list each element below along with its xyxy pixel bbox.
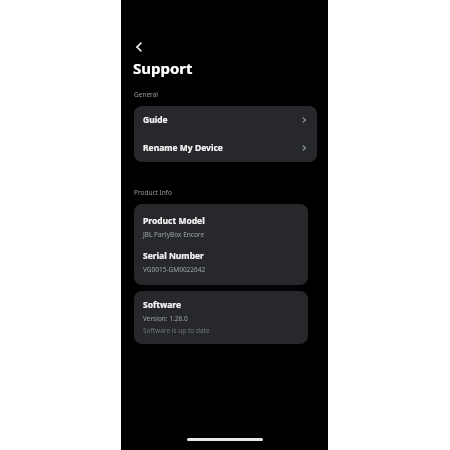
staticText: Support (133, 58, 193, 78)
staticText: General (134, 90, 158, 99)
button[interactable]: Guide (134, 106, 317, 134)
staticText: Software is up to date (143, 326, 210, 335)
button[interactable]: Rename My Device (134, 134, 317, 162)
staticText: Software (143, 299, 182, 311)
button[interactable]: Software (134, 291, 308, 344)
staticText: Product Info (134, 188, 172, 197)
staticText: JBL PartyBox Encore (143, 230, 205, 239)
staticText: Guide (143, 114, 168, 126)
staticText: VG0015-GM0022642 (143, 265, 206, 274)
staticText: Product Model (143, 215, 205, 227)
button[interactable]: Product Model (134, 204, 308, 285)
staticText: Rename My Device (143, 142, 223, 154)
button[interactable]: Back (130, 38, 148, 56)
staticText: Version: 1.26.0 (143, 314, 188, 323)
staticText: Serial Number (143, 250, 204, 262)
